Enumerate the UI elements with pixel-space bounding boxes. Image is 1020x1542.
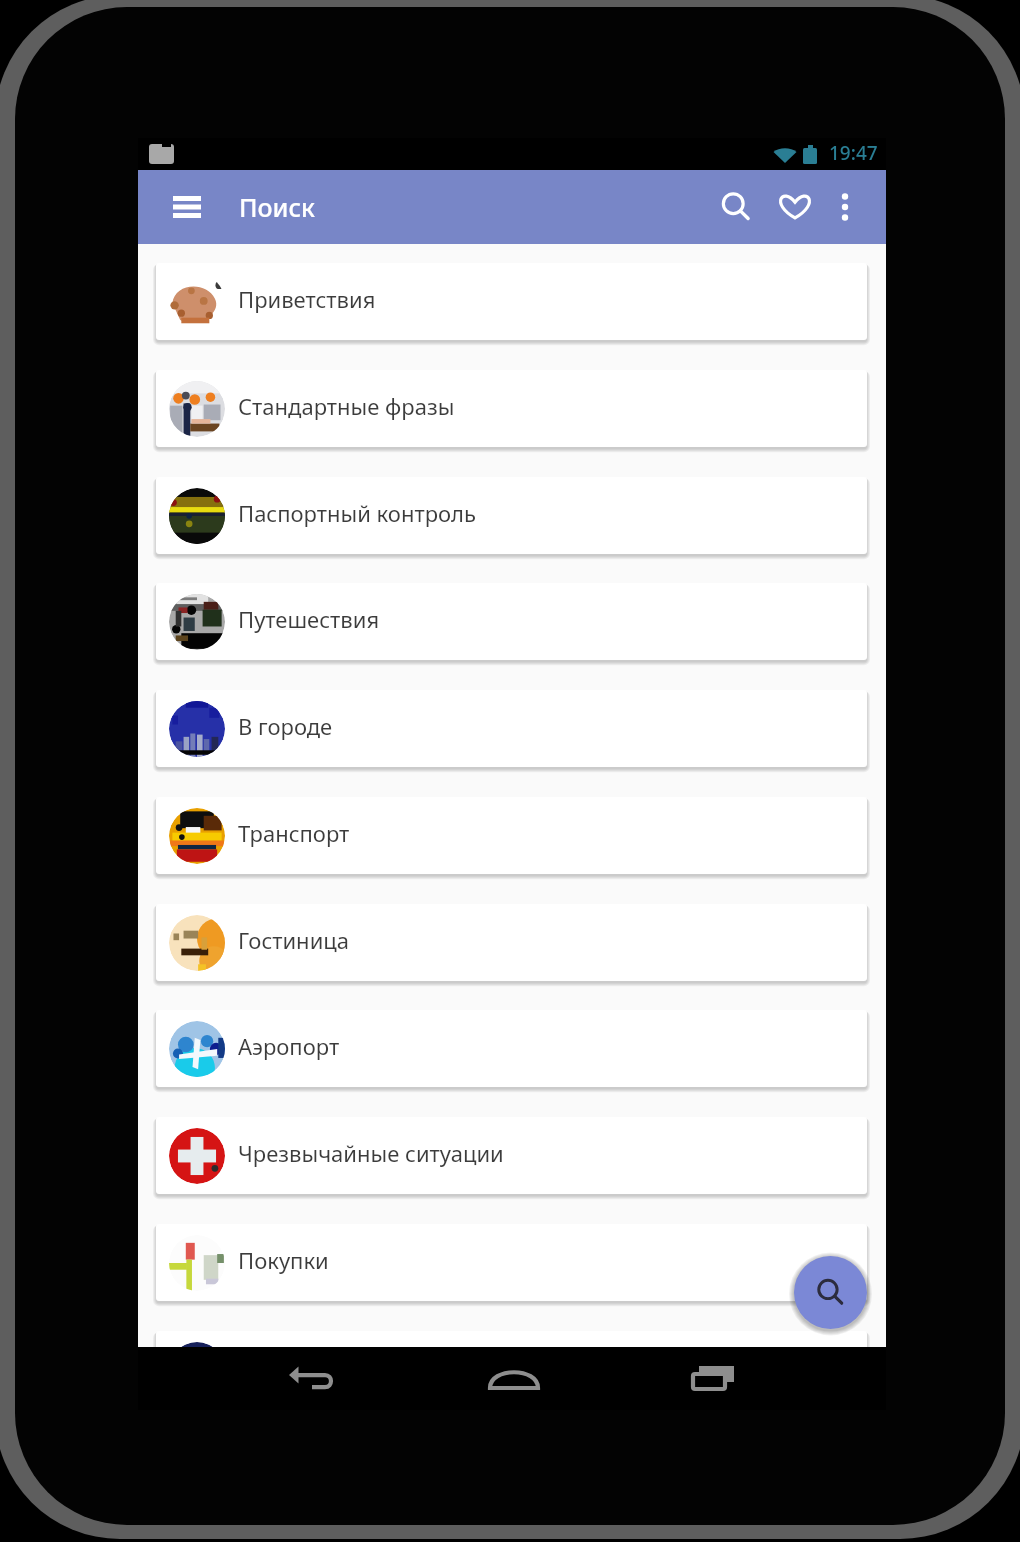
staticText: Аэропорт (238, 1031, 340, 1061)
button[interactable]: More options (823, 170, 867, 244)
button[interactable]: Search (794, 1256, 867, 1329)
staticText: Приветствия (238, 284, 376, 314)
button[interactable]: Приветствия (156, 263, 867, 340)
button[interactable]: Ресторан (156, 1331, 867, 1347)
button[interactable]: Back (271, 1353, 351, 1403)
staticText: Покупки (238, 1245, 329, 1275)
staticText: Гостиница (238, 925, 349, 955)
button[interactable]: В городе (156, 690, 867, 767)
button[interactable]: Favorites (767, 170, 823, 244)
button[interactable]: Покупки (156, 1224, 867, 1301)
staticText: В городе (238, 711, 333, 741)
button[interactable]: Recent apps (673, 1353, 753, 1403)
staticText: Чрезвычайные ситуации (238, 1138, 504, 1168)
button[interactable]: Аэропорт (156, 1010, 867, 1087)
staticText: Поиск (239, 190, 315, 224)
button[interactable]: Гостиница (156, 904, 867, 981)
staticText: 19:47 (829, 140, 878, 166)
button[interactable]: Чрезвычайные ситуации (156, 1117, 867, 1194)
button[interactable]: Транспорт (156, 797, 867, 874)
staticText: Путешествия (238, 604, 380, 634)
button[interactable]: Стандартные фразы (156, 370, 867, 447)
button[interactable]: Паспортный контроль (156, 477, 867, 554)
staticText: Паспортный контроль (238, 498, 476, 528)
button[interactable]: Open navigation drawer (159, 179, 215, 235)
button[interactable]: Search (704, 170, 767, 244)
button[interactable]: Home (474, 1353, 554, 1403)
staticText: Стандартные фразы (238, 391, 455, 421)
staticText: Транспорт (238, 818, 350, 848)
button[interactable]: Путешествия (156, 583, 867, 660)
